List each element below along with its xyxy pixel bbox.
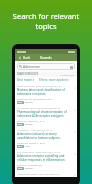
staticText: PDF <box>18 101 23 104</box>
button[interactable]: More options <box>73 174 76 176</box>
staticText: Search for relevant topics <box>4 11 88 31</box>
button[interactable]: Back <box>17 55 23 61</box>
staticText: Fredholm BB, IJzerman AP, et al. <box>17 97 53 100</box>
staticText: adenosine receptors. <box>17 92 47 96</box>
staticText: Klotz KN, Hessling J, et al. <box>17 119 46 122</box>
button[interactable]: Br J Pharmacol. 2006 Sep;149(1):11-9. <box>15 149 77 171</box>
staticText: Naunyn Schmied Arch. 2004;369:1-9. <box>17 172 60 175</box>
staticText: Adenosine-induced coronary <box>17 132 57 136</box>
staticText: Circulation. 1991 Jan;83(1):1-8. <box>17 128 53 131</box>
staticText: Pharmacological characterization of <box>17 110 67 114</box>
staticText: Review <box>25 167 33 170</box>
button[interactable]: More options <box>73 108 76 111</box>
staticText: adenosine A2A receptor subtypes. <box>17 114 65 118</box>
button[interactable]: Filters: none applied ▾ <box>39 78 69 82</box>
staticText: Filters: none applied ▾ <box>39 78 69 82</box>
button[interactable]: Naunyn Schmied Arch. 2004;369:1-9. <box>15 171 77 177</box>
staticText: Wilson RF, Wyche K, et al. <box>17 141 46 144</box>
button[interactable]: Pharmacol Rev. 2001 Dec;53(4):527-52. <box>15 83 77 105</box>
button[interactable]: Filter <box>69 65 73 69</box>
staticText: Review <box>25 123 33 126</box>
staticText: 1–20 of 5,421 <box>60 73 75 76</box>
button[interactable]: Mol Pharmacol. 1998 Apr;53(4):622-9. <box>15 105 77 127</box>
staticText: Adenosine <box>23 64 40 69</box>
staticText: PDF <box>18 145 23 148</box>
staticText: Mol Pharmacol. 1998 Apr;53(4):622-9. <box>17 106 61 109</box>
button[interactable]: Circulation. 1991 Jan;83(1):1-8. <box>15 127 77 149</box>
staticText: Best match ▾ <box>17 78 35 82</box>
button[interactable]: Best match ▾ <box>17 78 35 82</box>
staticText: PDF <box>18 167 23 170</box>
staticText: Review <box>25 101 33 104</box>
button[interactable]: More options <box>73 152 76 155</box>
staticText: Pharmacol Rev. 2001 Dec;53(4):527-52. <box>17 84 63 87</box>
staticText: Adenosine receptor signalling and <box>17 154 65 158</box>
staticText: Nomenclature and classification of <box>17 88 65 92</box>
staticText: Search <box>40 55 52 60</box>
staticText: Back <box>23 56 31 60</box>
staticText: vasodilation in human subjects. <box>17 136 61 140</box>
button[interactable]: More options <box>73 130 76 133</box>
staticText: PDF <box>18 123 23 126</box>
staticText: Trial <box>25 145 30 148</box>
button[interactable]: Adenosine <box>17 63 75 70</box>
button[interactable]: More options <box>73 86 76 89</box>
staticText: SEARCH RESULTS <box>17 72 39 76</box>
staticText: cellular responses in inflammation. <box>17 158 66 162</box>
staticText: Hasko G, Cronstein BN. <box>17 163 44 166</box>
staticText: Br J Pharmacol. 2006 Sep;149(1):11-9. <box>17 150 61 153</box>
